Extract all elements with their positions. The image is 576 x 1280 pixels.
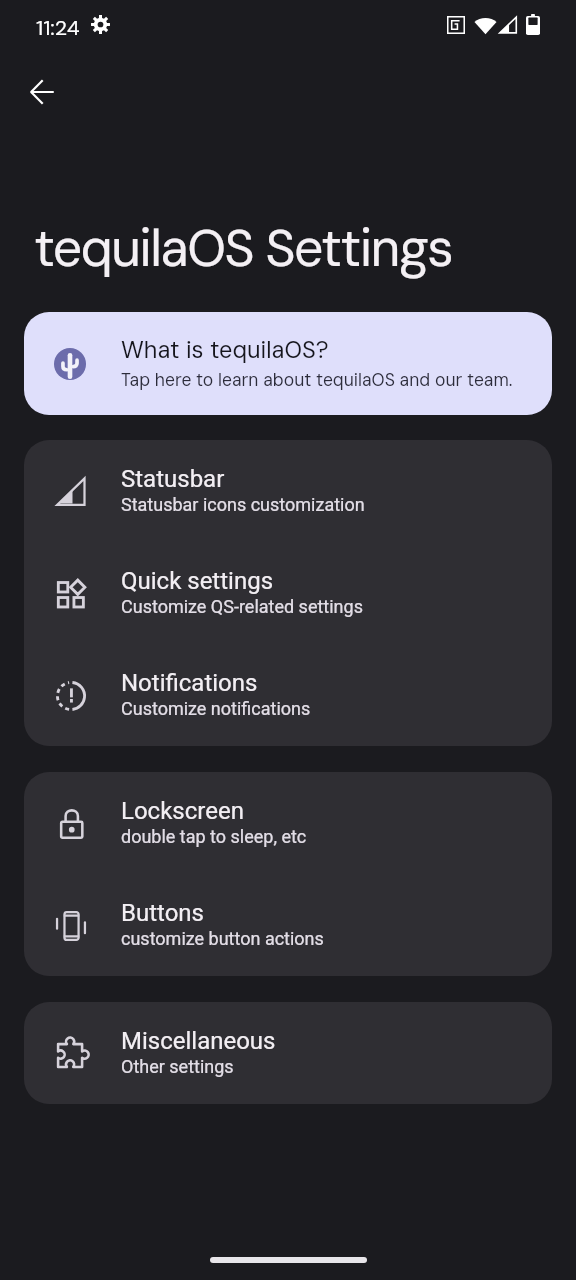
- button[interactable]: What is tequilaOS?: [24, 312, 552, 415]
- staticText: Quick settings: [121, 567, 274, 595]
- staticText: Customize notifications: [121, 698, 311, 719]
- staticText: Lockscreen: [121, 797, 244, 825]
- staticText: Other settings: [121, 1056, 234, 1077]
- staticText: Buttons: [121, 899, 204, 927]
- button[interactable]: Quick settings: [24, 542, 552, 644]
- staticText: Miscellaneous: [121, 1027, 276, 1055]
- button[interactable]: Notifications: [24, 644, 552, 746]
- staticText: Customize QS-related settings: [121, 596, 363, 617]
- staticText: tequilaOS Settings: [34, 214, 452, 282]
- button[interactable]: Buttons: [24, 874, 552, 976]
- staticText: Tap here to learn about tequilaOS and ou…: [121, 369, 513, 392]
- staticText: Statusbar: [121, 465, 225, 493]
- button[interactable]: Miscellaneous: [24, 1002, 552, 1104]
- staticText: 11:24: [36, 14, 80, 41]
- staticText: Statusbar icons customization: [121, 494, 365, 515]
- button[interactable]: Lockscreen: [24, 772, 552, 874]
- button[interactable]: Navigate up: [17, 67, 66, 116]
- staticText: customize button actions: [121, 928, 324, 949]
- staticText: Notifications: [121, 669, 258, 697]
- button[interactable]: Statusbar: [24, 440, 552, 542]
- staticText: What is tequilaOS?: [121, 335, 329, 366]
- staticText: double tap to sleep, etc: [121, 826, 307, 847]
